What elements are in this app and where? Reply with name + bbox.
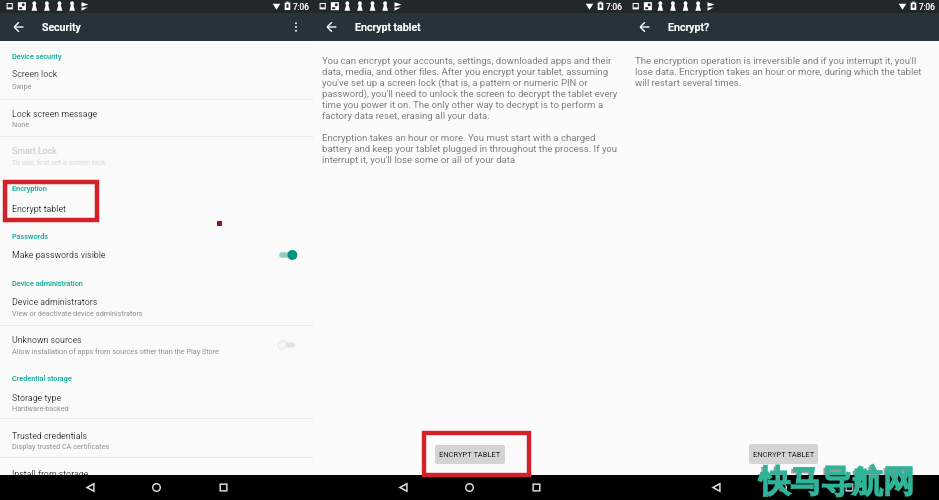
staticText: ENCRYPT TABLET bbox=[753, 450, 815, 459]
staticText: 快马导航网 bbox=[759, 462, 914, 500]
staticText: To use, first set a screen lock bbox=[12, 158, 106, 166]
staticText: Passwords bbox=[12, 232, 48, 241]
staticText: 7:06 bbox=[919, 2, 935, 12]
staticText: 快马导航网 bbox=[757, 464, 912, 500]
button[interactable]: Navigate up bbox=[5, 13, 33, 41]
button[interactable] bbox=[0, 267, 313, 297]
staticText: Screen lock bbox=[12, 69, 58, 79]
staticText: Lock screen message bbox=[12, 109, 98, 119]
staticText: Swipe bbox=[12, 82, 32, 90]
staticText: 7:06 bbox=[606, 2, 622, 12]
button[interactable] bbox=[0, 304, 313, 334]
button[interactable] bbox=[0, 50, 313, 79]
staticText: Display trusted CA certificates bbox=[12, 442, 110, 450]
staticText: Device administrators bbox=[12, 297, 98, 307]
button[interactable]: Back bbox=[391, 475, 415, 499]
staticText: Credential storage bbox=[12, 374, 72, 383]
staticText: 7:06 bbox=[293, 2, 309, 12]
staticText: Allow installation of apps from sources … bbox=[12, 347, 219, 355]
button[interactable]: Home bbox=[144, 475, 168, 499]
button[interactable]: Home bbox=[457, 475, 481, 499]
staticText: View or deactivate device administrators bbox=[12, 309, 143, 317]
button[interactable] bbox=[0, 390, 313, 420]
button[interactable] bbox=[0, 87, 313, 117]
staticText: Smart Lock bbox=[12, 146, 57, 156]
button[interactable]: Switch on bbox=[277, 247, 301, 263]
button[interactable]: Recent apps bbox=[524, 475, 548, 499]
button[interactable]: Back bbox=[78, 475, 102, 499]
staticText: Device administration bbox=[12, 279, 83, 288]
staticText: Encryption bbox=[12, 184, 47, 193]
button[interactable]: ENCRYPT TABLET bbox=[749, 444, 818, 464]
button[interactable] bbox=[0, 125, 313, 155]
button[interactable]: More options bbox=[282, 13, 310, 41]
staticText: Unknown sources bbox=[12, 335, 82, 345]
button[interactable]: Recent apps bbox=[837, 475, 861, 499]
staticText: Install from storage bbox=[12, 469, 89, 479]
staticText: The encryption operation is irreversible… bbox=[635, 55, 922, 88]
staticText: You can encrypt your accounts, settings,… bbox=[322, 55, 618, 121]
staticText: Encrypt? bbox=[668, 21, 710, 33]
staticText: Trusted credentials bbox=[12, 431, 88, 441]
staticText: Encrypt tablet bbox=[355, 21, 421, 33]
button[interactable] bbox=[0, 173, 313, 203]
button[interactable] bbox=[0, 428, 313, 448]
staticText: Make passwords visible bbox=[12, 250, 106, 260]
button[interactable]: Back bbox=[704, 475, 728, 499]
button[interactable] bbox=[0, 221, 313, 249]
staticText: None bbox=[12, 120, 30, 128]
button[interactable]: Home bbox=[770, 475, 794, 499]
staticText: Hardware-backed bbox=[12, 404, 69, 412]
staticText: Device security bbox=[12, 52, 62, 61]
button[interactable]: Switch off bbox=[277, 337, 301, 353]
button[interactable] bbox=[0, 352, 313, 382]
staticText: Encrypt tablet bbox=[12, 204, 66, 214]
button[interactable]: Navigate up bbox=[318, 13, 346, 41]
staticText: ENCRYPT TABLET bbox=[439, 450, 501, 459]
button[interactable]: Navigate up bbox=[631, 13, 659, 41]
button[interactable]: Recent apps bbox=[211, 475, 235, 499]
staticText: Storage type bbox=[12, 393, 62, 403]
button[interactable]: ENCRYPT TABLET bbox=[435, 445, 505, 464]
staticText: Security bbox=[42, 21, 81, 33]
staticText: Encryption takes an hour or more. You mu… bbox=[322, 132, 618, 165]
